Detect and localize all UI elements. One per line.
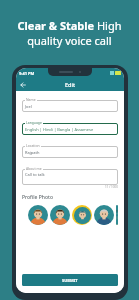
staticText: Language (26, 120, 42, 125)
staticText: About me (26, 166, 42, 171)
button[interactable]: Profile photo 5 (116, 205, 118, 225)
staticText: 11 / 1000 (105, 185, 118, 189)
staticText: Profile Photo (22, 194, 53, 201)
staticText: Clear & Stable High quality voice call (6, 18, 133, 48)
button[interactable]: Profile photo 1 (28, 205, 48, 225)
button[interactable]: Joel (22, 97, 118, 112)
button[interactable]: Back (17, 79, 28, 90)
button[interactable]: SUBMIT (22, 274, 118, 286)
staticText: Location (26, 143, 40, 148)
staticText: Edit (65, 81, 76, 88)
staticText: SUBMIT (62, 278, 78, 283)
staticText: 9:41 PM (19, 71, 35, 76)
button[interactable]: Profile photo 2 (50, 205, 70, 225)
button[interactable]: Profile photo 3 (72, 205, 92, 225)
staticText: Name (26, 97, 36, 102)
button[interactable]: Profile photo 4 (94, 205, 114, 225)
staticText: English | Hindi | Bangla | Assamese (25, 127, 94, 132)
staticText: Rajpath (25, 150, 40, 155)
button[interactable]: English | Hindi | Bangla | Assamese (22, 120, 118, 135)
staticText: Call to talk (25, 172, 45, 177)
staticText: Joel (25, 104, 32, 109)
button[interactable]: Call to talk (22, 166, 118, 185)
button[interactable]: Rajpath (22, 143, 118, 158)
